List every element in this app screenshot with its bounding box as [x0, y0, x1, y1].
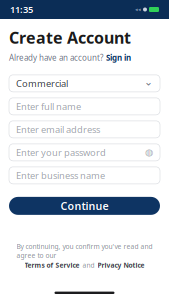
staticText: Privacy Notice — [97, 261, 144, 270]
staticText: ⌄ — [144, 76, 153, 88]
staticText: and — [82, 261, 94, 270]
button[interactable]: Enter email address — [9, 121, 160, 138]
staticText: ◂◂ — [135, 6, 141, 13]
staticText: Create Account — [9, 27, 131, 48]
button[interactable]: Sign in — [106, 52, 131, 63]
button[interactable]: Enter business name — [9, 167, 160, 184]
button[interactable]: Enter your password — [9, 144, 160, 161]
staticText: Enter full name — [16, 100, 81, 113]
button[interactable]: Commercial — [9, 75, 160, 92]
staticText: ◍ — [145, 147, 153, 158]
staticText: 11:35 — [10, 3, 33, 16]
staticText: Commercial — [16, 77, 68, 90]
staticText: Continue — [60, 199, 108, 213]
button[interactable]: Privacy Notice — [97, 261, 144, 270]
staticText: Sign in — [106, 52, 131, 63]
staticText: By continuing, you confirm you've read a… — [16, 242, 152, 260]
staticText: Enter business name — [16, 169, 105, 182]
button[interactable]: Terms of Service — [24, 261, 79, 270]
staticText: Already have an account? — [9, 52, 103, 63]
button[interactable]: Enter full name — [9, 98, 160, 115]
staticText: Terms of Service — [24, 261, 79, 270]
staticText: Enter your password — [16, 146, 106, 159]
button[interactable]: Continue — [9, 197, 160, 215]
staticText: Enter email address — [16, 123, 100, 136]
